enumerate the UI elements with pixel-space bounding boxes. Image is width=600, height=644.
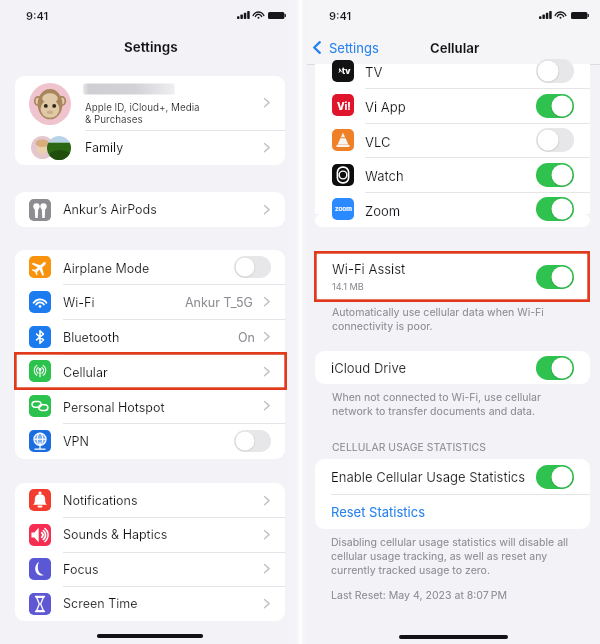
staticText: Personal Hotspot — [63, 400, 165, 415]
button[interactable]: Watch, on — [536, 163, 574, 187]
staticText: Watch — [365, 168, 404, 184]
button[interactable]: Family — [15, 130, 285, 165]
staticText: currently tracked usage to zero. — [331, 564, 490, 577]
staticText: Cellular — [63, 365, 108, 380]
staticText: Bluetooth — [63, 330, 120, 345]
button[interactable]: iCloud Drive, on — [536, 356, 574, 380]
staticText: Apple ID, iCloud+, Media — [85, 102, 200, 114]
staticText: network to transfer documents and data. — [332, 405, 536, 418]
button[interactable]: Personal Hotspot — [15, 389, 285, 424]
staticText: Reset Statistics — [331, 504, 426, 520]
staticText: Zoom — [365, 203, 401, 219]
staticText: 14.1 MB — [332, 281, 364, 292]
staticText: CELLULAR USAGE STATISTICS — [332, 441, 486, 453]
staticText: VLC — [365, 134, 391, 150]
staticText: Sounds & Haptics — [63, 527, 168, 542]
button[interactable]: VPN, off — [234, 430, 271, 452]
button[interactable]: Vi App — [315, 88, 590, 123]
button[interactable]: Bluetooth — [15, 319, 285, 354]
button[interactable]: Airplane Mode, off — [234, 256, 271, 278]
staticText: VPN — [63, 434, 90, 449]
staticText: Wi-Fi — [63, 295, 95, 310]
staticText: 9:41 — [329, 9, 352, 22]
staticText: Airplane Mode — [63, 261, 150, 276]
staticText: iCloud Drive — [331, 360, 407, 376]
staticText: Settings — [329, 40, 379, 56]
staticText: tv — [342, 66, 351, 76]
button[interactable]: TV — [315, 64, 590, 88]
button[interactable]: Vi App, on — [536, 94, 574, 118]
button[interactable]: VPN — [15, 423, 285, 458]
button[interactable]: Enable Cellular Usage Statistics, on — [536, 465, 574, 489]
button[interactable]: Zoom, on — [536, 197, 574, 221]
staticText: zoom — [335, 205, 352, 213]
button[interactable]: Cellular — [15, 354, 285, 389]
button[interactable]: VLC, off — [536, 128, 574, 152]
staticText: & Purchases — [85, 114, 143, 126]
staticText: 9:41 — [26, 9, 49, 22]
staticText: Focus — [63, 562, 99, 577]
staticText: Ankur’s AirPods — [63, 202, 157, 217]
button[interactable]: Airplane Mode — [15, 250, 285, 285]
button[interactable]: Zoom — [315, 192, 590, 227]
staticText: Settings — [124, 39, 178, 55]
staticText: Vi! — [337, 100, 351, 112]
staticText: Vi App — [365, 99, 406, 115]
staticText: TV — [365, 64, 383, 80]
staticText: Automatically use cellular data when Wi-… — [332, 306, 544, 319]
staticText: Family — [85, 140, 124, 155]
button[interactable]: Watch — [315, 157, 590, 192]
staticText: Notifications — [63, 493, 138, 508]
button[interactable]: Reset Statistics — [315, 494, 590, 529]
staticText: On — [238, 330, 255, 345]
button[interactable]: TV, off — [536, 59, 574, 83]
staticText: cellular usage tracking, as well as rese… — [331, 550, 548, 563]
staticText: Wi-Fi Assist — [332, 261, 406, 277]
staticText: Screen Time — [63, 596, 138, 611]
button[interactable]: Notifications — [15, 483, 285, 517]
button[interactable]: Back to Settings — [311, 38, 383, 58]
staticText: Last Reset: May 4, 2023 at 8:07 PM — [331, 589, 507, 602]
button[interactable]: VLC — [315, 123, 590, 158]
button[interactable]: Wi-Fi Assist, on — [536, 265, 574, 289]
button[interactable]: Sounds & Haptics — [15, 517, 285, 551]
button[interactable]: Focus — [15, 552, 285, 586]
button[interactable]: Enable Cellular Usage Statistics — [315, 459, 590, 494]
button[interactable]: Wi-Fi Assist — [315, 253, 590, 300]
staticText: When not connected to Wi-Fi, use cellula… — [332, 391, 541, 404]
staticText: Disabling cellular usage statistics will… — [331, 536, 569, 549]
staticText: Enable Cellular Usage Statistics — [331, 469, 526, 485]
button[interactable]: Ankur’s AirPods — [15, 192, 285, 227]
button[interactable]: iCloud Drive — [315, 351, 590, 384]
staticText: Cellular — [430, 40, 480, 56]
button[interactable]: Wi-Fi — [15, 284, 285, 319]
button[interactable]: Screen Time — [15, 586, 285, 620]
staticText: connectivity is poor. — [332, 320, 433, 333]
staticText: Ankur T_5G — [185, 295, 253, 310]
button[interactable]: Apple ID, iCloud+, Media — [15, 76, 285, 130]
